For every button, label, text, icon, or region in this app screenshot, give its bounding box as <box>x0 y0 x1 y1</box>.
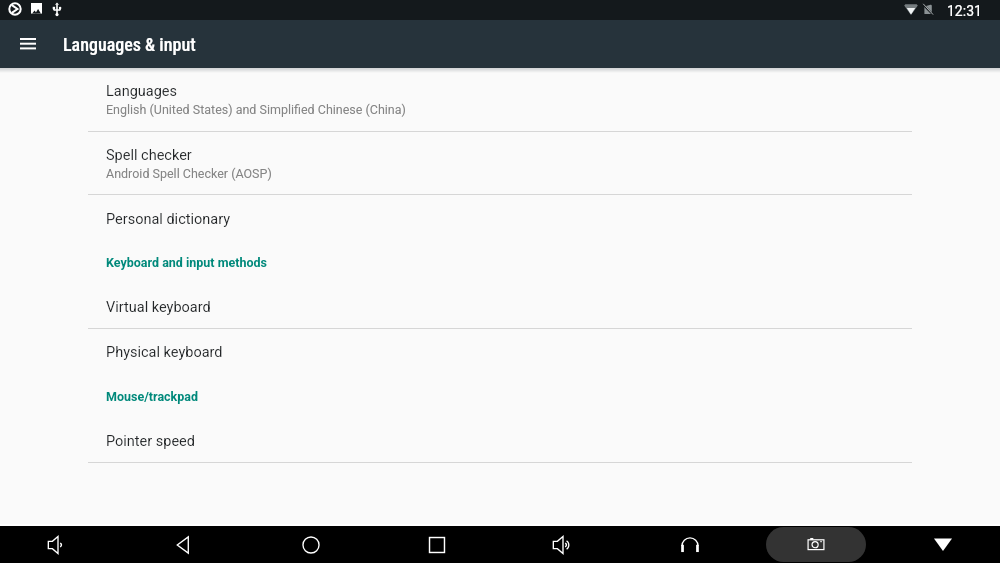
button[interactable]: Volume up <box>539 526 587 563</box>
button[interactable]: Recent apps <box>413 526 461 563</box>
staticText: Mouse/trackpad <box>106 389 199 404</box>
button[interactable]: Physical keyboard <box>0 329 1000 375</box>
button[interactable]: Personal dictionary <box>0 195 1000 241</box>
staticText: Spell checker <box>106 147 192 164</box>
button[interactable]: Languages <box>0 68 1000 132</box>
button[interactable]: Spell checker <box>0 133 1000 194</box>
button[interactable]: Open navigation menu <box>0 20 56 68</box>
button[interactable]: Screenshot <box>766 527 866 562</box>
staticText: English (United States) and Simplified C… <box>106 102 406 117</box>
button[interactable]: Volume down <box>34 526 82 563</box>
button[interactable]: Hide navigation bar <box>919 526 967 563</box>
staticText: Languages <box>106 83 178 100</box>
button[interactable]: Back <box>159 526 207 563</box>
button[interactable]: Headphones <box>666 526 714 563</box>
staticText: Android Spell Checker (AOSP) <box>106 166 272 181</box>
staticText: Pointer speed <box>106 433 195 450</box>
staticText: Physical keyboard <box>106 344 223 361</box>
staticText: Languages & input <box>63 34 196 55</box>
button[interactable]: Pointer speed <box>0 419 1000 462</box>
button[interactable]: Virtual keyboard <box>0 282 1000 328</box>
staticText: 12:31 <box>947 3 982 19</box>
staticText: Personal dictionary <box>106 211 231 228</box>
staticText: Keyboard and input methods <box>106 255 267 270</box>
staticText: Virtual keyboard <box>106 299 211 316</box>
button[interactable]: Home <box>287 526 335 563</box>
